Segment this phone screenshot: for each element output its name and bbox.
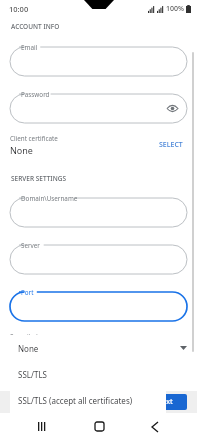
button[interactable]: SELECT [155,137,187,153]
staticText: Port [21,288,34,297]
button[interactable]: Switch to modern authentication [10,398,143,407]
staticText: 100% [166,4,184,14]
staticText: Switch to modern authentication [10,398,117,407]
button[interactable]: Domain\Username [10,192,187,227]
staticText: ACCOUNT INFO [11,22,60,31]
button[interactable]: Back [140,413,170,440]
staticText: Password [21,90,50,99]
staticText: SELECT [159,140,183,150]
button[interactable]: Next [143,394,187,410]
button[interactable]: Password [10,88,187,123]
button[interactable]: Expand security type [178,343,188,353]
staticText: 10:00 [9,4,29,14]
staticText: SSL/TLS [18,369,47,380]
staticText: Server [21,241,40,250]
button[interactable]: SSL/TLS [10,361,166,387]
button[interactable]: Server [10,239,187,274]
staticText: Client certificate [10,134,58,143]
button[interactable]: Port [10,286,187,321]
staticText: Next [157,397,173,407]
staticText: None [10,144,33,156]
button[interactable]: Client certificate [10,134,187,156]
button[interactable]: Recents [27,413,57,440]
button[interactable]: None [10,335,166,361]
staticText: None [18,343,39,354]
staticText: Email [21,43,38,52]
button[interactable]: Show password [165,101,179,115]
button[interactable]: Email [10,41,187,76]
staticText: Security type [10,332,50,341]
staticText: SERVER SETTINGS [11,174,66,183]
staticText: Domain\Username [21,194,78,203]
staticText: SSL/TLS (accept all certificates) [18,395,133,406]
button[interactable]: Home [84,413,114,440]
button[interactable]: SSL/TLS (accept all certificates) [10,387,166,413]
